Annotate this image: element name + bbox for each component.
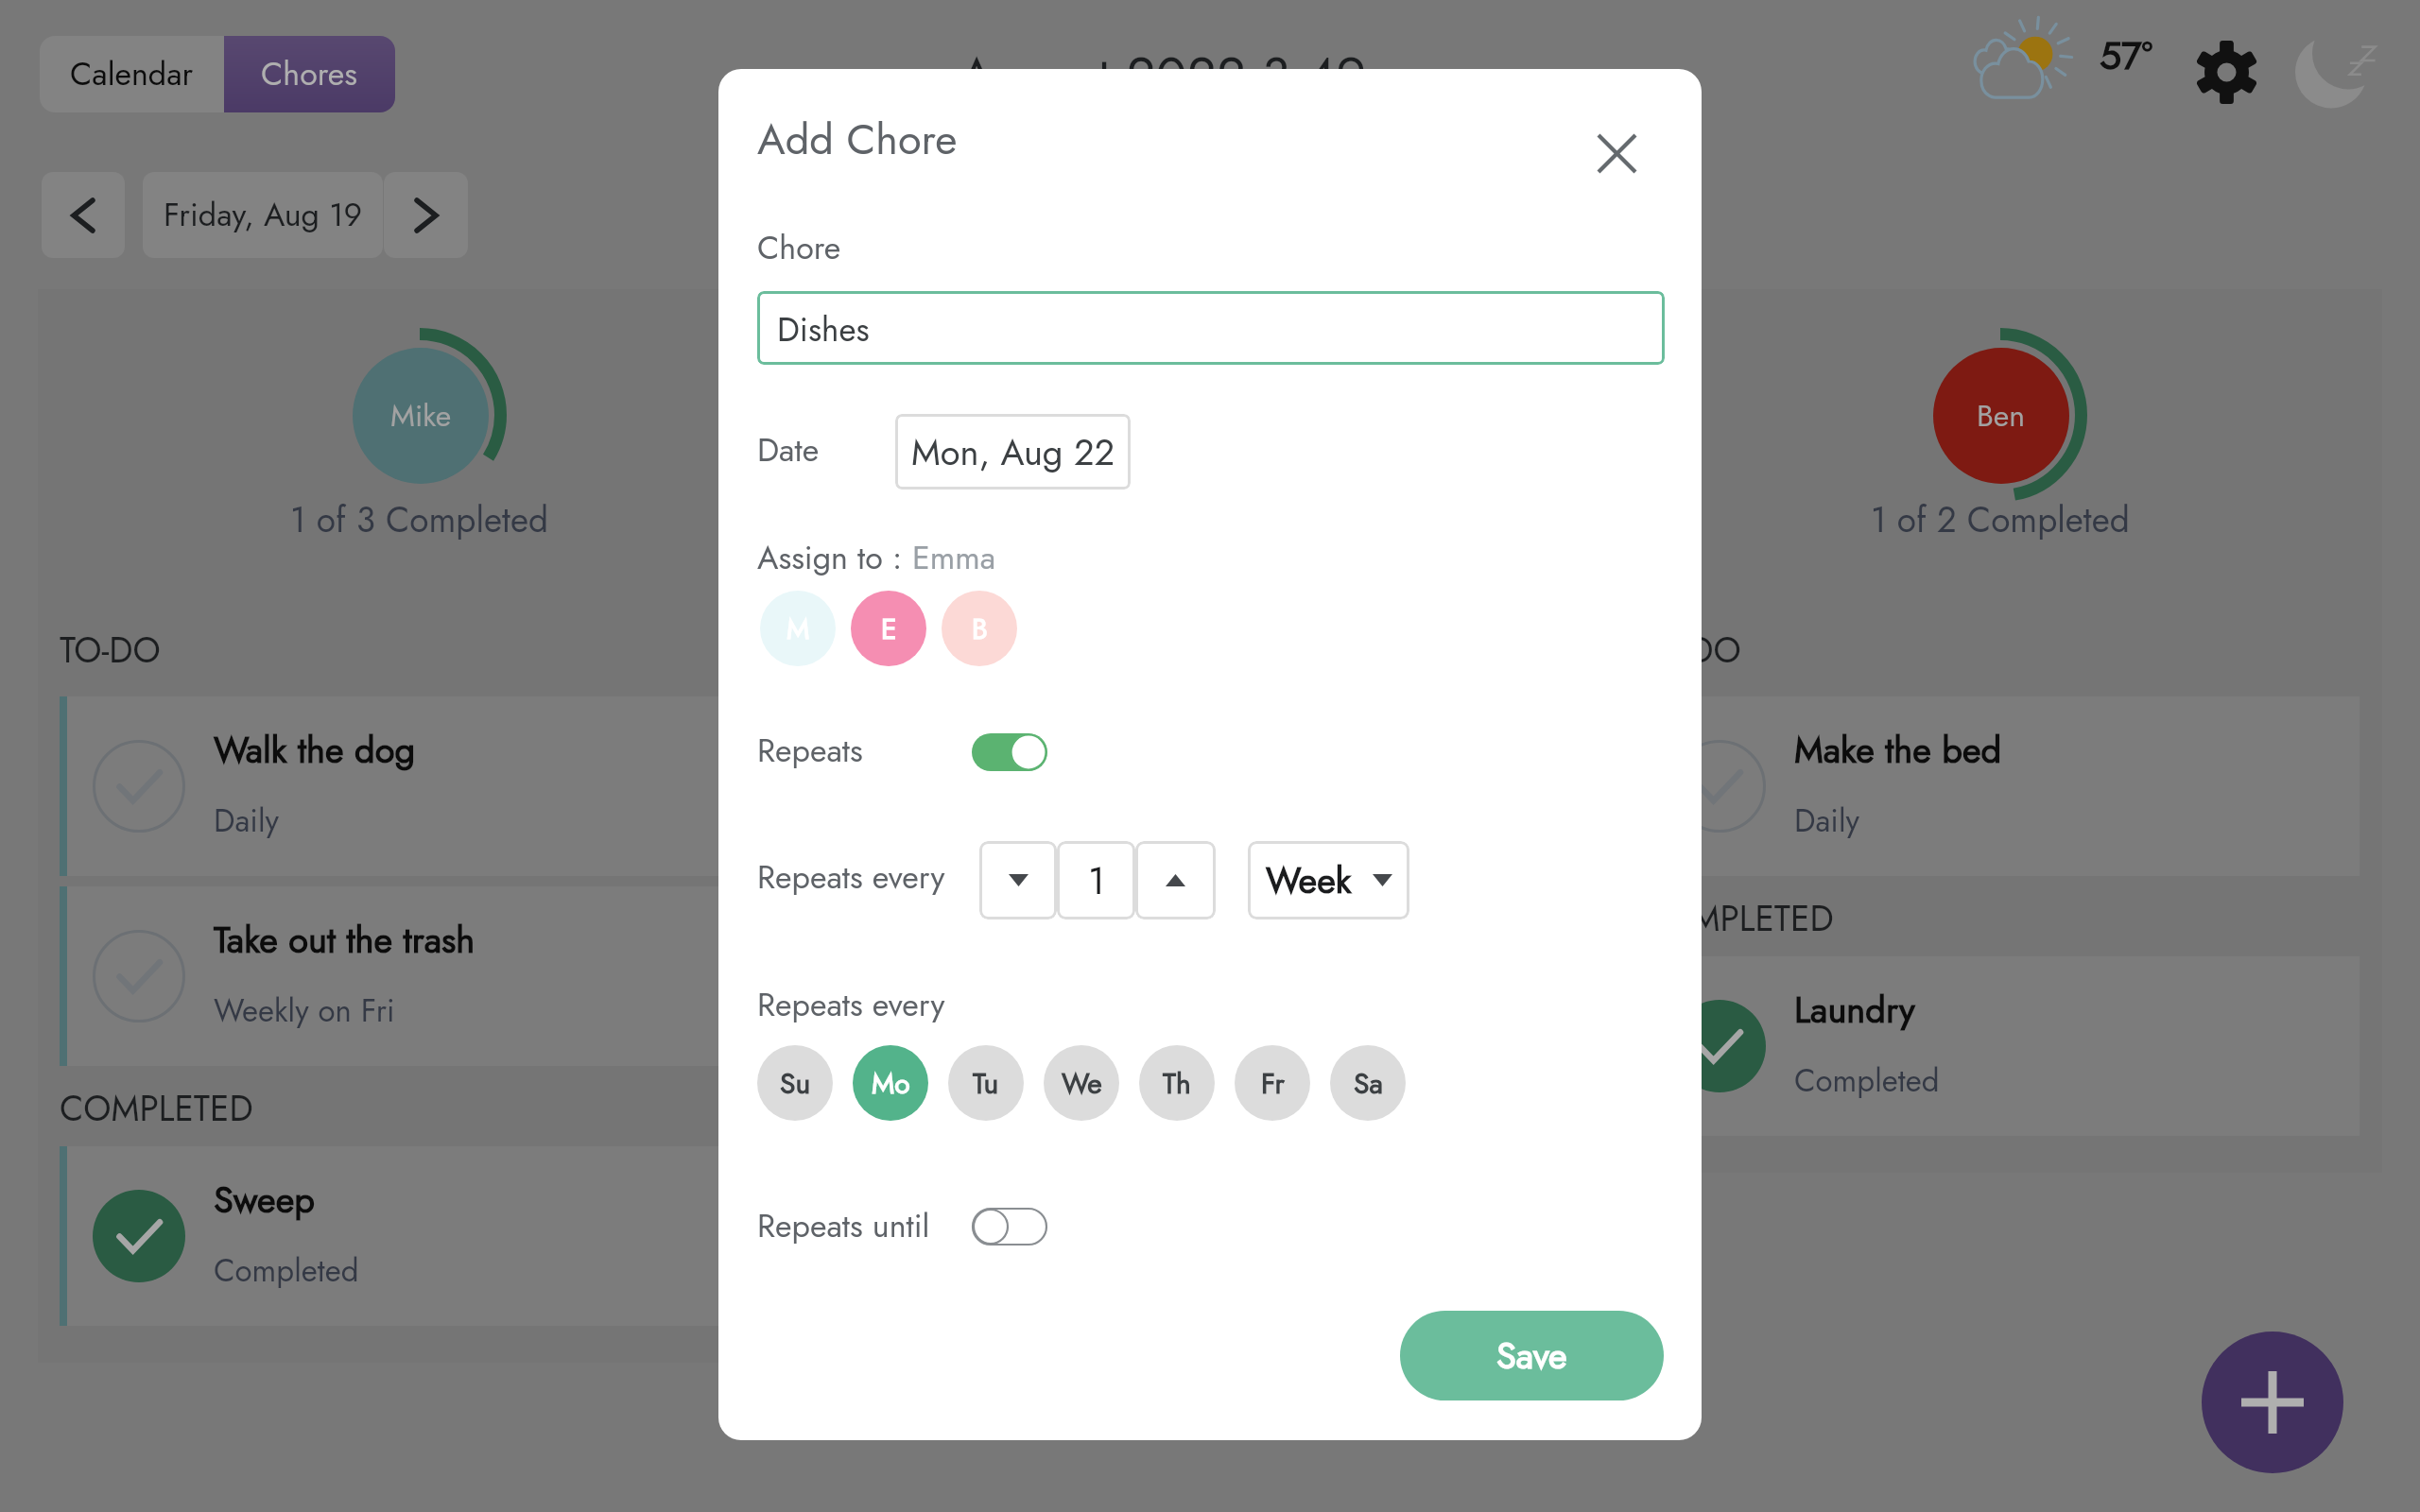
staticText: Daily xyxy=(214,799,280,844)
staticText: Su xyxy=(780,1063,811,1104)
staticText: Calendar xyxy=(70,51,194,97)
staticText: Fr xyxy=(1261,1063,1285,1104)
staticText: COMPLETED xyxy=(1640,893,1834,943)
staticText: Repeats xyxy=(757,728,863,774)
staticText: Daily xyxy=(1794,799,1860,844)
staticText: COMPLETED xyxy=(850,1083,1044,1133)
staticText: Repeats every xyxy=(757,854,945,901)
button[interactable]: Sa xyxy=(1330,1045,1406,1121)
staticText: Repeats every xyxy=(757,982,945,1028)
staticText: Completed xyxy=(214,1248,359,1294)
staticText: M xyxy=(786,609,810,649)
button[interactable]: Friday, Aug 19 xyxy=(143,172,383,258)
button[interactable]: M xyxy=(760,591,836,666)
staticText: Walk the dog xyxy=(214,724,416,776)
staticText: Water plants xyxy=(1004,914,1192,966)
button[interactable]: Mo xyxy=(853,1045,928,1121)
button[interactable]: Save xyxy=(1400,1311,1664,1400)
button[interactable]: B xyxy=(942,591,1017,666)
staticText: Friday, Aug 19 xyxy=(164,192,363,238)
button[interactable]: Increase xyxy=(1135,841,1216,919)
staticText: Sa xyxy=(1354,1063,1383,1104)
staticText: Add Chore xyxy=(757,109,958,170)
staticText: Take out the trash xyxy=(214,914,475,966)
staticText: We xyxy=(1062,1063,1102,1104)
staticText: Week xyxy=(1266,854,1352,906)
staticText: 1 of 2 Completed xyxy=(1871,494,2130,544)
button[interactable]: Chores xyxy=(224,36,395,112)
staticText: Dishes xyxy=(777,306,870,354)
button[interactable]: Decrease xyxy=(979,841,1057,919)
button[interactable]: Vacuum xyxy=(850,696,1569,876)
staticText: Weekly on Fri xyxy=(214,988,395,1034)
button[interactable]: Mon, Aug 22 xyxy=(895,414,1131,490)
button[interactable]: Emma xyxy=(1143,348,1279,484)
staticText: Date xyxy=(757,427,820,473)
button[interactable]: E xyxy=(851,591,926,666)
button[interactable]: Fr xyxy=(1235,1045,1310,1121)
button[interactable]: Settings xyxy=(2195,41,2258,104)
staticText: TO-DO xyxy=(1640,625,1741,675)
button[interactable]: Sweep xyxy=(60,1146,779,1326)
staticText: August 2022 3:49 xyxy=(959,39,1366,113)
staticText: TO-DO xyxy=(60,625,161,675)
staticText: TO-DO xyxy=(850,625,951,675)
staticText: 1 of 3 Completed xyxy=(290,494,549,544)
staticText: E xyxy=(881,609,897,649)
staticText: Mike xyxy=(390,394,452,438)
staticText: Emma xyxy=(912,535,996,581)
staticText: Completed xyxy=(1794,1058,1940,1104)
staticText: Mon, Aug 22 xyxy=(911,426,1115,478)
button[interactable]: Do not disturb xyxy=(2295,34,2380,110)
staticText: Repeats until xyxy=(757,1203,930,1249)
staticText: Make the bed xyxy=(1794,724,2002,776)
staticText: Daily xyxy=(1004,799,1070,844)
button[interactable]: Close xyxy=(1586,123,1647,183)
staticText: Sweep xyxy=(214,1174,315,1226)
button[interactable]: We xyxy=(1044,1045,1119,1121)
staticText: Vacuum xyxy=(1004,724,1125,776)
staticText: Chores xyxy=(261,51,358,97)
button[interactable]: Ben xyxy=(1933,348,2069,484)
staticText: 1 xyxy=(1088,853,1105,908)
staticText: B xyxy=(972,609,988,649)
staticText: Chore xyxy=(757,225,841,271)
staticText: Th xyxy=(1163,1063,1191,1104)
staticText: Ben xyxy=(1977,394,2026,438)
staticText: Mo xyxy=(872,1063,910,1104)
button[interactable]: Su xyxy=(757,1045,833,1121)
button[interactable]: Th xyxy=(1139,1045,1215,1121)
button[interactable]: Previous day xyxy=(42,172,125,258)
staticText: Tu xyxy=(973,1063,999,1104)
button[interactable]: Laundry xyxy=(1640,956,2359,1136)
button[interactable]: Toggle on xyxy=(972,733,1047,771)
button[interactable]: Mike xyxy=(353,348,489,484)
button[interactable]: Water plants xyxy=(850,886,1569,1066)
button[interactable]: Toggle off xyxy=(972,1208,1047,1246)
button[interactable]: Next day xyxy=(384,172,468,258)
button[interactable]: Calendar xyxy=(40,36,224,112)
staticText: 57° xyxy=(2100,27,2153,83)
staticText: Laundry xyxy=(1794,984,1915,1036)
button[interactable]: Take out the trash xyxy=(60,886,779,1066)
button[interactable]: Week xyxy=(1248,841,1409,919)
button[interactable]: 1 xyxy=(1057,841,1135,919)
button[interactable]: Dishes xyxy=(757,291,1665,365)
button[interactable]: Add chore xyxy=(2202,1332,2343,1473)
button[interactable]: Make the bed xyxy=(1640,696,2359,876)
staticText: Save xyxy=(1496,1330,1567,1382)
staticText: Assign to : xyxy=(757,535,912,581)
button[interactable]: Tu xyxy=(948,1045,1024,1121)
staticText: COMPLETED xyxy=(60,1083,253,1133)
button[interactable]: Walk the dog xyxy=(60,696,779,876)
